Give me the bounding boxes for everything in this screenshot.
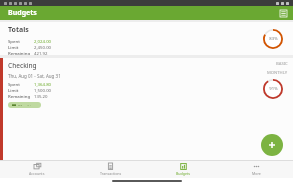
staticText: Limit bbox=[8, 44, 34, 50]
button[interactable]: More bbox=[220, 161, 293, 178]
staticText: 83% bbox=[269, 36, 278, 42]
staticText: Budgets bbox=[176, 171, 191, 176]
button[interactable]: Menu bbox=[273, 6, 293, 20]
staticText: 2,450.00 bbox=[34, 44, 52, 50]
staticText: 91% bbox=[269, 86, 278, 92]
staticText: Spent bbox=[8, 38, 34, 44]
staticText: Accounts bbox=[29, 171, 45, 176]
staticText: Remaining bbox=[8, 50, 34, 55]
staticText: Totals bbox=[8, 25, 29, 35]
button[interactable]: Transactions bbox=[74, 161, 147, 178]
staticText: Checking bbox=[8, 61, 37, 70]
staticText: Thu, Aug 01 - Sat, Aug 31 bbox=[8, 73, 61, 79]
staticText: 1,500.00 bbox=[34, 87, 52, 93]
button[interactable]: Add budget bbox=[261, 134, 283, 156]
staticText: Limit bbox=[8, 87, 34, 93]
staticText: 1,364.80 bbox=[34, 81, 52, 87]
button[interactable]: Budgets bbox=[147, 161, 220, 178]
button[interactable]: Accounts bbox=[0, 161, 74, 178]
staticText: 2,024.00 bbox=[34, 38, 52, 44]
staticText: BASIC bbox=[276, 61, 288, 67]
staticText: MONTHLY bbox=[267, 70, 288, 76]
button[interactable]: Checking bbox=[8, 102, 41, 108]
staticText: Checking bbox=[18, 104, 37, 106]
staticText: More bbox=[252, 171, 261, 176]
staticText: Budgets bbox=[8, 8, 37, 18]
staticText: 421.92 bbox=[34, 50, 48, 55]
button[interactable]: Checking bbox=[0, 58, 293, 160]
staticText: Spent bbox=[8, 81, 34, 87]
button[interactable]: Totals bbox=[0, 22, 293, 55]
staticText: Transactions bbox=[100, 171, 122, 176]
staticText: 135.20 bbox=[34, 93, 48, 99]
staticText: Remaining bbox=[8, 93, 34, 99]
